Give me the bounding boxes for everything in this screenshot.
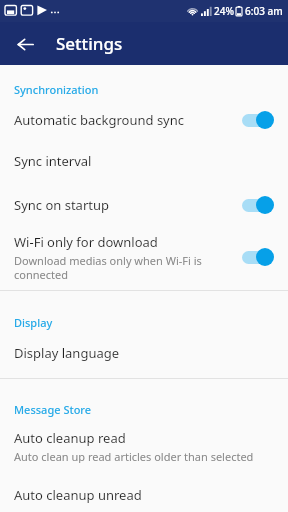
staticText: Settings bbox=[56, 32, 123, 55]
button[interactable]: Auto cleanup unread bbox=[0, 485, 288, 505]
button[interactable]: Automatic background sync bbox=[0, 105, 288, 135]
staticText: Download medias only when Wi-Fi is conne… bbox=[14, 253, 202, 281]
button[interactable]: Automatic background sync bbox=[240, 110, 276, 130]
staticText: Display bbox=[14, 315, 53, 330]
staticText: Display language bbox=[14, 344, 120, 362]
staticText: Message Store bbox=[14, 402, 92, 417]
staticText: Sync on startup bbox=[14, 196, 110, 214]
staticText: Automatic background sync bbox=[14, 111, 185, 129]
button[interactable]: Sync on startup bbox=[240, 195, 276, 215]
staticText: Synchronization bbox=[14, 82, 99, 97]
staticText: Sync interval bbox=[14, 152, 92, 170]
button[interactable]: Wi-Fi only for download bbox=[240, 247, 276, 267]
button[interactable]: Back bbox=[10, 29, 40, 59]
button[interactable]: Sync interval bbox=[0, 148, 288, 174]
staticText: 6:03 am bbox=[245, 4, 283, 18]
button[interactable]: Display language bbox=[0, 340, 288, 366]
staticText: Auto cleanup read bbox=[14, 429, 126, 447]
button[interactable]: Wi-Fi only for download bbox=[0, 233, 288, 281]
staticText: 24% bbox=[214, 4, 234, 18]
staticText: Wi-Fi only for download bbox=[14, 233, 158, 251]
button[interactable]: Sync on startup bbox=[0, 191, 288, 219]
staticText: Auto clean up read articles older than s… bbox=[14, 449, 276, 463]
staticText: Auto cleanup unread bbox=[14, 486, 142, 504]
button[interactable]: Auto cleanup read bbox=[0, 429, 288, 463]
